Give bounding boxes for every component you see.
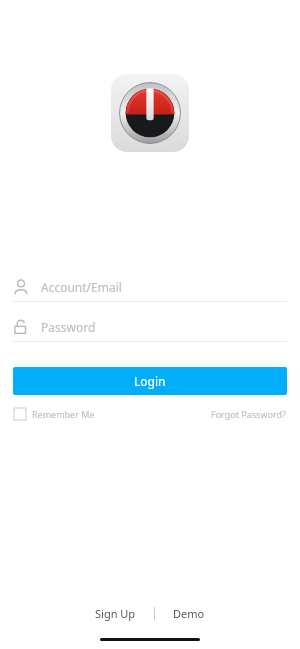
staticText: Account/Email	[41, 279, 122, 295]
staticText: Demo	[173, 606, 205, 621]
button[interactable]: Login	[13, 367, 287, 395]
button[interactable]: Remember Me	[14, 408, 95, 420]
staticText: Forgot Password?	[211, 408, 286, 420]
button[interactable]: Account/Email	[13, 272, 287, 301]
other: App logo	[111, 74, 189, 152]
staticText: Remember Me	[32, 408, 95, 420]
button[interactable]: Password	[13, 312, 287, 341]
button[interactable]: Sign Up	[95, 606, 136, 621]
staticText: Password	[41, 319, 96, 335]
staticText: Login	[134, 373, 166, 389]
button[interactable]: Demo	[173, 606, 205, 621]
button[interactable]: Forgot Password?	[211, 408, 286, 420]
staticText: Sign Up	[95, 606, 136, 621]
